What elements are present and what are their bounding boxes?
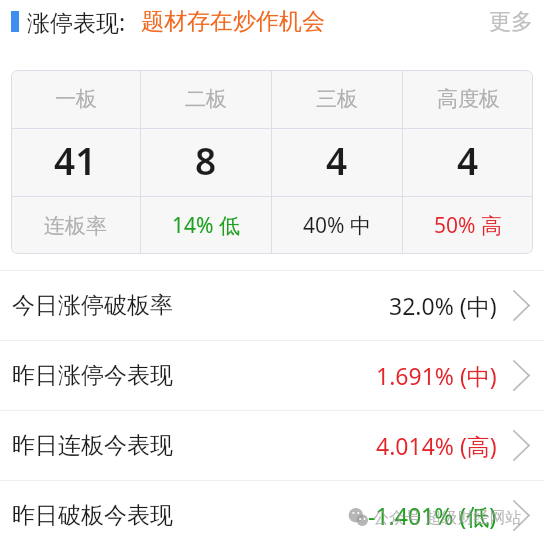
staticText: 1.691% (中)	[376, 360, 497, 391]
staticText: 昨日涨停今表现	[12, 361, 173, 390]
button[interactable]: 昨日涨停今表现	[0, 341, 544, 410]
staticText: 41	[54, 135, 97, 185]
staticText: 三板	[316, 86, 358, 112]
staticText: 连板率	[44, 213, 107, 239]
staticText: 4	[326, 135, 348, 185]
staticText: 今日涨停破板率	[12, 291, 173, 320]
staticText: 更多	[489, 8, 533, 36]
staticText: 14% 低	[172, 211, 240, 240]
staticText: 题材存在炒作机会	[141, 7, 325, 36]
button[interactable]: 更多	[478, 2, 544, 42]
staticText: 高度板	[437, 86, 500, 112]
staticText: 32.0% (中)	[389, 290, 497, 321]
staticText: 4	[457, 135, 479, 185]
staticText: 一板	[55, 86, 97, 112]
button[interactable]: 昨日破板今表现	[0, 481, 544, 539]
staticText: 50% 高	[434, 211, 502, 240]
staticText: 4.014% (高)	[376, 430, 497, 461]
staticText: -1.401% (低)	[368, 500, 497, 531]
button[interactable]: 今日涨停破板率	[0, 271, 544, 340]
staticText: 公众号 超级财经网站	[373, 506, 522, 528]
button[interactable]: 昨日连板今表现	[0, 411, 544, 480]
staticText: 8	[195, 135, 217, 185]
staticText: 昨日连板今表现	[12, 431, 173, 460]
staticText: 涨停表现:	[27, 6, 126, 37]
staticText: 二板	[185, 86, 227, 112]
staticText: 昨日破板今表现	[12, 501, 173, 530]
staticText: 40% 中	[303, 211, 371, 240]
